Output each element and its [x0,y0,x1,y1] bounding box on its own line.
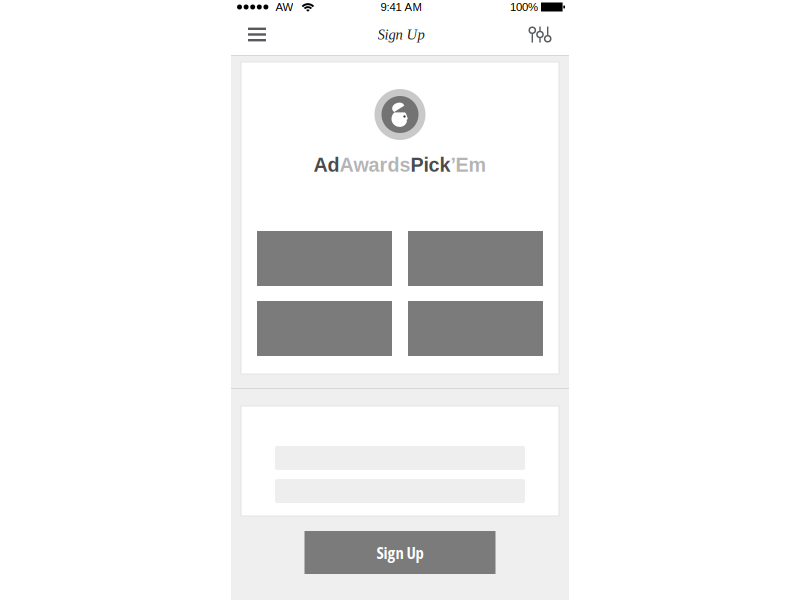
staticText: Sign Up [376,541,423,564]
button[interactable]: Menu [237,18,277,50]
staticText: Awards [339,154,410,176]
staticText: AW [275,1,293,13]
staticText: Pick [410,154,450,176]
staticText: Sign Up [377,26,424,43]
staticText: 100% [510,1,538,13]
button[interactable]: Sign Up [304,531,495,574]
staticText: 9:41 AM [380,1,421,13]
staticText: ’Em [450,154,486,176]
button[interactable]: Filter settings [520,18,560,50]
staticText: Ad [313,154,339,176]
